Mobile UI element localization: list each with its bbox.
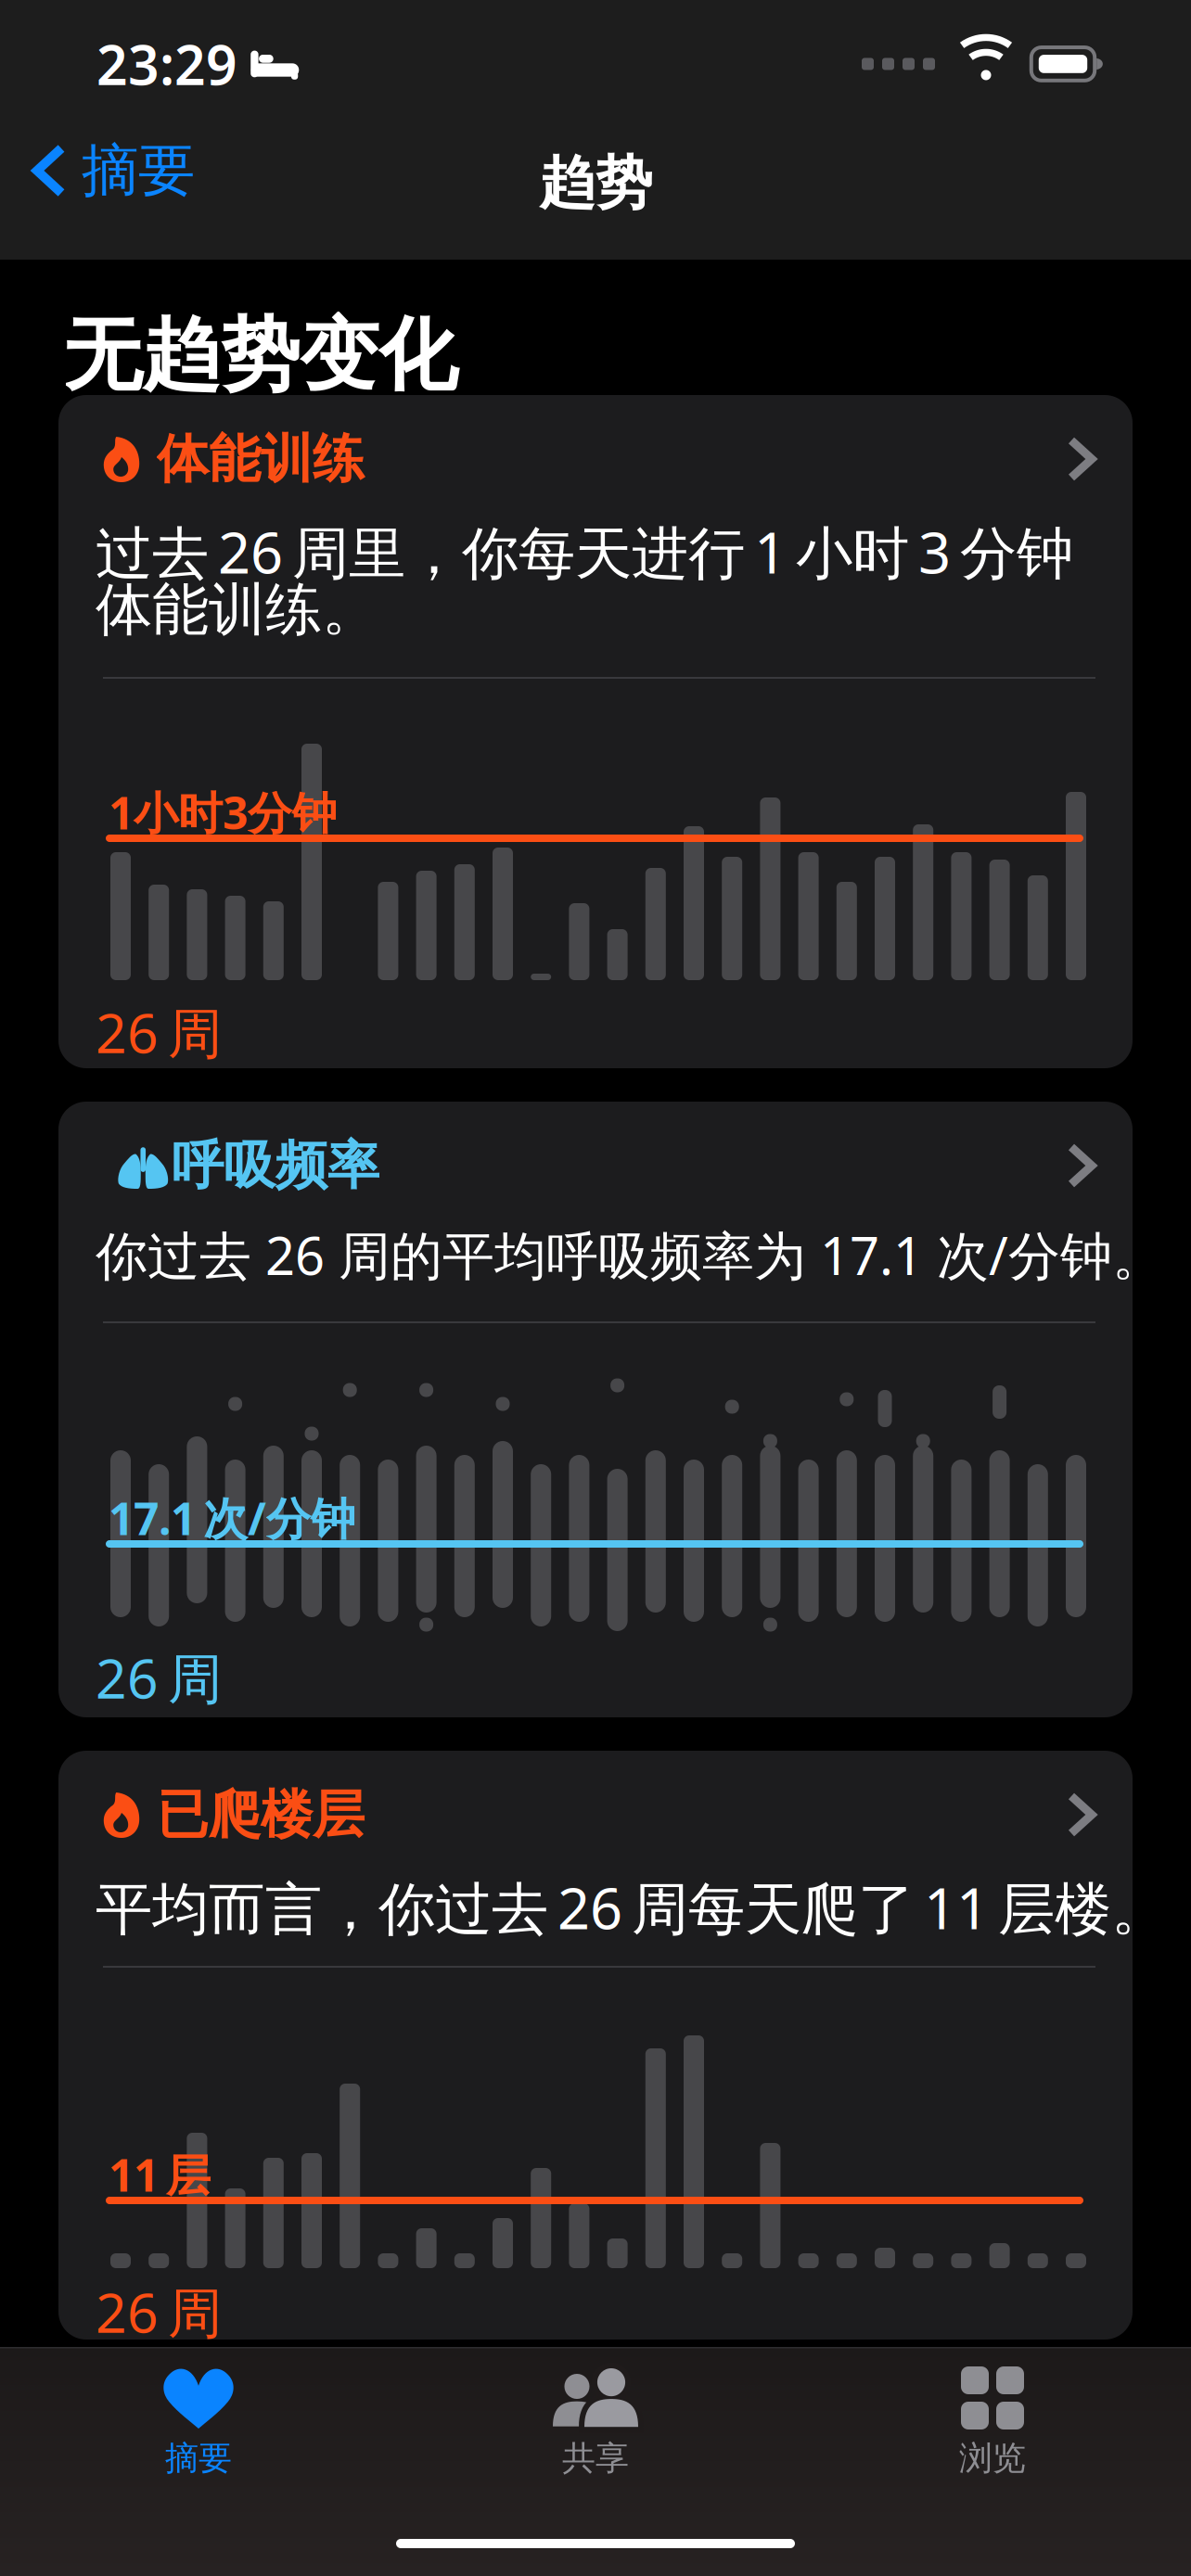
- button[interactable]: 已爬楼层: [58, 1751, 1133, 2340]
- staticText: 浏览: [959, 2438, 1026, 2479]
- staticText: 摘要: [165, 2438, 232, 2479]
- button[interactable]: 呼吸频率: [58, 1102, 1133, 1717]
- staticText: 共享: [562, 2438, 629, 2479]
- staticText: 17.1 次/分钟: [109, 1488, 355, 1547]
- button[interactable]: 共享: [397, 2367, 794, 2488]
- staticText: 摘要: [82, 136, 195, 205]
- staticText: 体能训练: [157, 427, 365, 491]
- staticText: 趋势: [539, 148, 652, 218]
- staticText: 26 周: [96, 996, 223, 1068]
- button[interactable]: 浏览: [794, 2367, 1191, 2488]
- staticText: 26 周: [96, 2276, 223, 2348]
- staticText: 11 层: [109, 2145, 211, 2204]
- staticText: 过去 26 周里，你每天进行 1 小时 3 分钟: [96, 514, 1073, 589]
- staticText: 1小时3分钟: [109, 783, 337, 842]
- staticText: 23:29: [96, 28, 237, 100]
- staticText: 你过去 26 周的平均呼吸频率为 17.1 次/分钟。: [96, 1220, 1164, 1289]
- button[interactable]: 体能训练: [58, 395, 1133, 1068]
- staticText: 平均而言，你过去 26 周每天爬了 11 层楼。: [96, 1869, 1168, 1945]
- staticText: 26 周: [96, 1641, 223, 1714]
- staticText: 已爬楼层: [157, 1783, 365, 1847]
- staticText: 呼吸频率: [172, 1134, 379, 1197]
- button[interactable]: 摘要: [0, 2367, 397, 2488]
- staticText: 体能训练。: [96, 575, 378, 645]
- staticText: 无趋势变化: [63, 307, 457, 404]
- button[interactable]: 摘要: [0, 111, 195, 230]
